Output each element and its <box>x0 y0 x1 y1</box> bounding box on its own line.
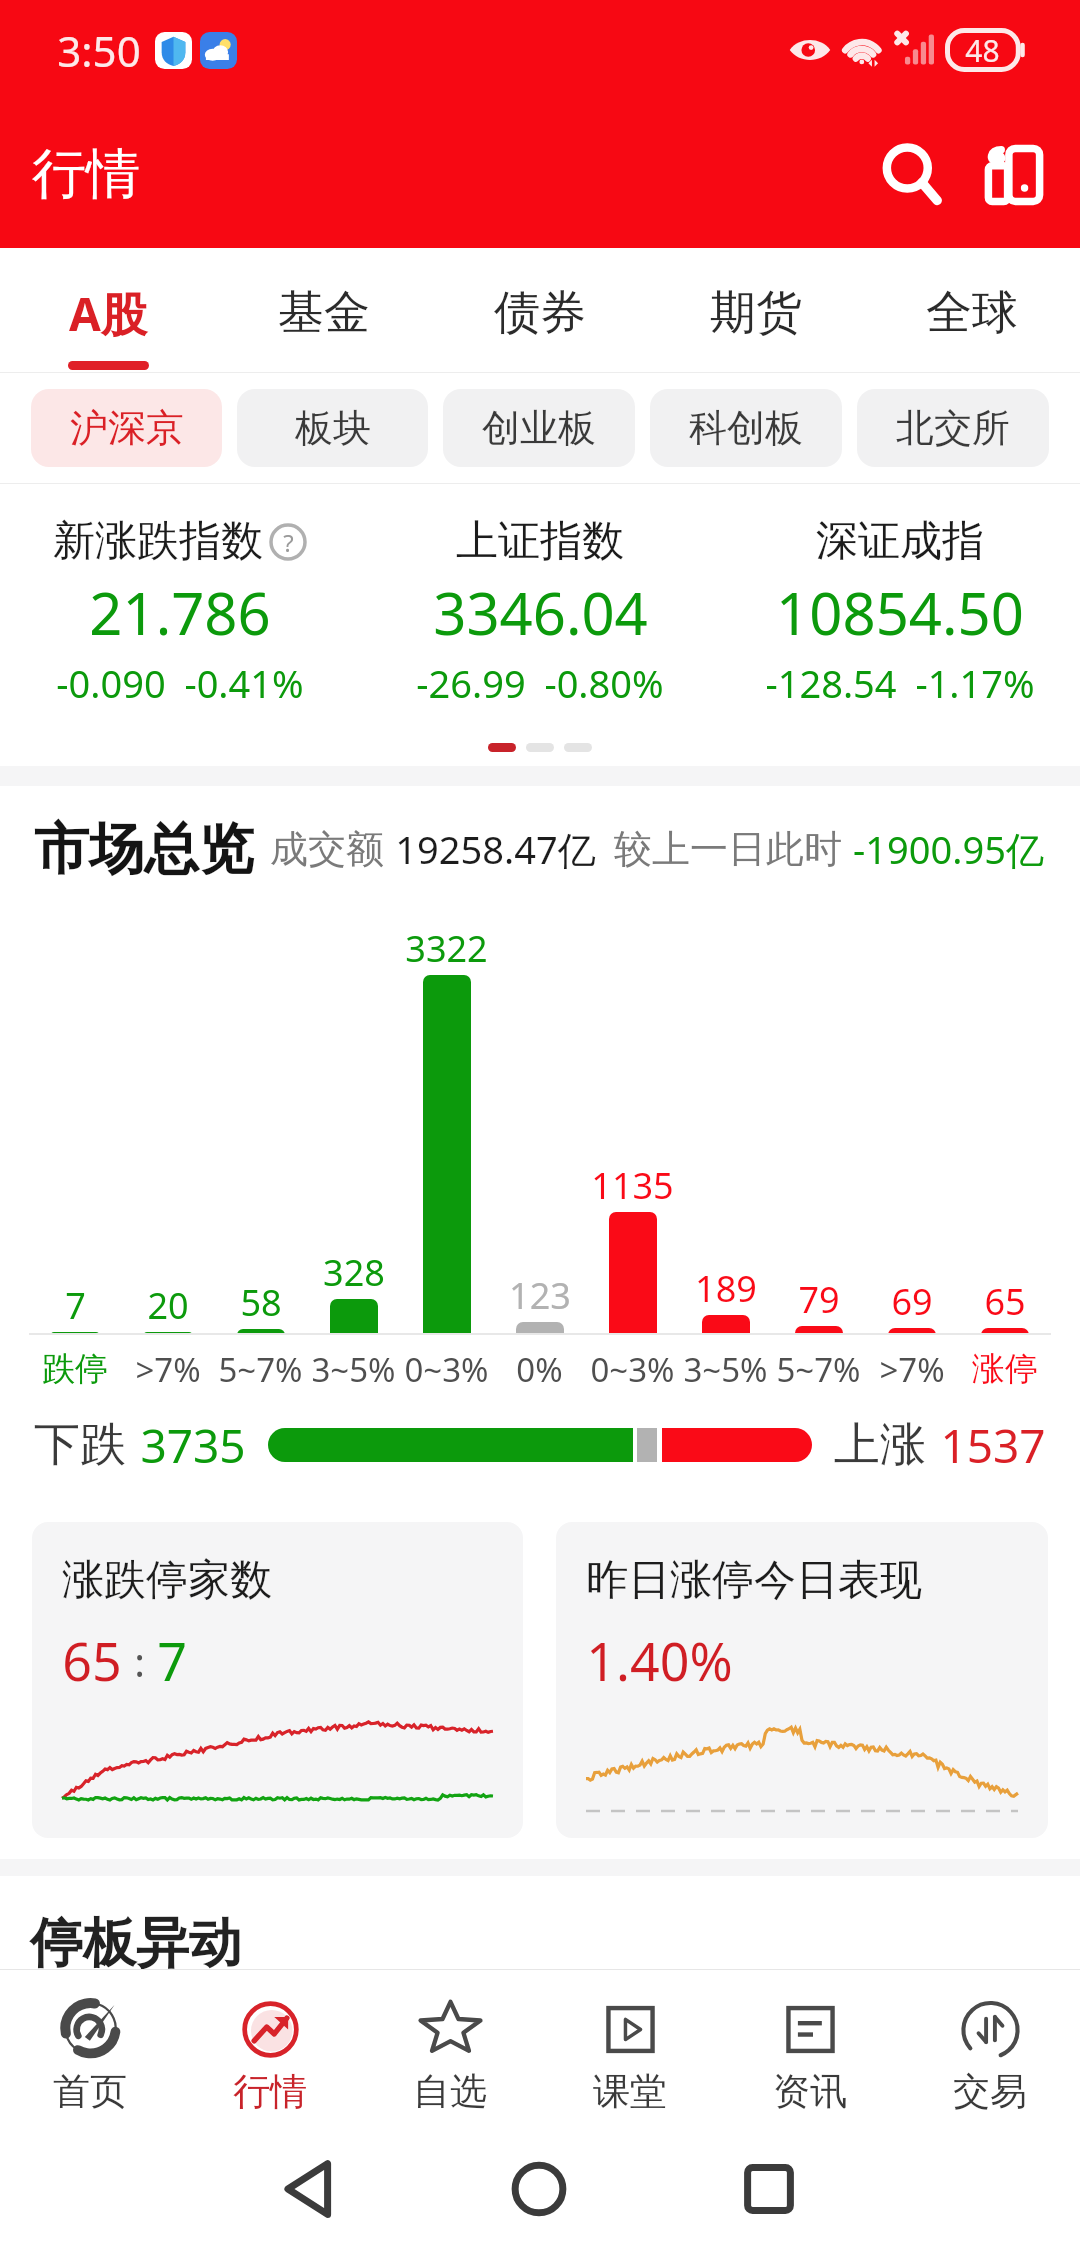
staticText: 65 <box>62 1625 122 1696</box>
staticText: 上涨 <box>834 1416 926 1474</box>
staticText: -128.54 <box>765 657 897 709</box>
staticText: 5~7% <box>218 1347 303 1392</box>
staticText: -26.99 <box>416 657 526 709</box>
button[interactable]: 涨跌停家数 <box>32 1522 523 1838</box>
button[interactable]: Search <box>872 134 952 214</box>
staticText: -1900.95亿 <box>853 823 1044 875</box>
staticText: 3322 <box>405 924 488 973</box>
button[interactable]: 北交所 <box>857 389 1049 467</box>
staticText: : <box>134 1634 145 1688</box>
staticText: >7% <box>135 1347 201 1392</box>
staticText: 3:50 <box>57 22 141 79</box>
button[interactable]: Trade tools <box>974 134 1054 214</box>
staticText: 328 <box>323 1248 385 1297</box>
button[interactable]: 科创板 <box>650 389 842 467</box>
staticText: 行情 <box>233 2068 307 2115</box>
staticText: 189 <box>695 1264 757 1313</box>
staticText: >7% <box>879 1347 945 1392</box>
staticText: 自选 <box>413 2068 487 2115</box>
staticText: 北交所 <box>896 404 1010 452</box>
staticText: 1537 <box>940 1414 1046 1477</box>
staticText: 65 <box>984 1277 1026 1326</box>
button[interactable]: 行情 <box>180 1970 360 2122</box>
staticText: 债券 <box>494 284 586 342</box>
button[interactable]: 上证指数 <box>360 515 720 709</box>
staticText: 昨日涨停今日表现 <box>586 1554 922 1607</box>
staticText: 交易 <box>953 2068 1027 2115</box>
staticText: 1135 <box>591 1161 674 1210</box>
staticText: 21.786 <box>89 573 271 652</box>
staticText: 20 <box>147 1281 189 1330</box>
staticText: 3346.04 <box>433 573 648 652</box>
staticText: ? <box>283 526 294 559</box>
button[interactable]: 期货 <box>648 248 864 372</box>
staticText: 首页 <box>53 2068 127 2115</box>
staticText: 沪深京 <box>70 404 184 452</box>
staticText: -0.41% <box>184 657 304 709</box>
staticText: -1.17% <box>915 657 1035 709</box>
button[interactable]: 全球 <box>864 248 1080 372</box>
staticText: -0.80% <box>544 657 664 709</box>
staticText: 0~3% <box>404 1347 489 1392</box>
staticText: -0.090 <box>56 657 166 709</box>
button[interactable]: 基金 <box>216 248 432 372</box>
staticText: 48 <box>965 30 1000 71</box>
button[interactable]: 沪深京 <box>31 389 222 467</box>
button[interactable]: 交易 <box>900 1970 1080 2122</box>
button[interactable]: 债券 <box>432 248 648 372</box>
staticText: 19258.47亿 <box>395 823 596 875</box>
staticText: 5~7% <box>776 1347 861 1392</box>
staticText: 跌停 <box>42 1348 108 1390</box>
staticText: 创业板 <box>482 404 596 452</box>
staticText: 市场总览 <box>34 815 254 884</box>
button[interactable]: Back <box>278 2158 340 2220</box>
button[interactable]: A股 <box>0 248 216 372</box>
staticText: 成交额 <box>270 825 384 873</box>
staticText: 涨跌停家数 <box>62 1554 272 1607</box>
staticText: 58 <box>240 1278 282 1327</box>
staticText: 资讯 <box>773 2068 847 2115</box>
staticText: 79 <box>798 1275 840 1324</box>
staticText: 69 <box>891 1277 933 1326</box>
staticText: 基金 <box>278 284 370 342</box>
button[interactable]: 资讯 <box>720 1970 900 2122</box>
button[interactable]: 深证成指 <box>720 515 1080 709</box>
staticText: 10854.50 <box>776 573 1024 652</box>
staticText: 7 <box>65 1281 86 1330</box>
button[interactable]: 新涨跌指数 <box>0 515 360 709</box>
staticText: 3~5% <box>683 1347 768 1392</box>
button[interactable]: 课堂 <box>540 1970 720 2122</box>
staticText: 0~3% <box>590 1347 675 1392</box>
staticText: 全球 <box>926 284 1018 342</box>
staticText: 深证成指 <box>816 515 984 568</box>
staticText: 新涨跌指数 <box>53 515 263 568</box>
staticText: 行情 <box>32 140 140 208</box>
staticText: 123 <box>509 1271 571 1320</box>
button[interactable]: 自选 <box>360 1970 540 2122</box>
staticText: 3735 <box>140 1414 246 1477</box>
button[interactable]: 昨日涨停今日表现 <box>556 1522 1048 1838</box>
staticText: A股 <box>69 282 147 345</box>
staticText: 涨停 <box>972 1348 1038 1390</box>
staticText: 3~5% <box>311 1347 396 1392</box>
staticText: 上证指数 <box>456 515 624 568</box>
staticText: 0% <box>516 1347 563 1392</box>
staticText: 板块 <box>295 404 371 452</box>
staticText: 7 <box>157 1625 187 1696</box>
staticText: 科创板 <box>689 404 803 452</box>
button[interactable]: Home <box>508 2158 570 2220</box>
staticText: 课堂 <box>593 2068 667 2115</box>
staticText: 下跌 <box>34 1416 126 1474</box>
button[interactable]: 板块 <box>237 389 428 467</box>
button[interactable]: 首页 <box>0 1970 180 2122</box>
staticText: 期货 <box>710 284 802 342</box>
button[interactable]: 创业板 <box>443 389 635 467</box>
staticText: 较上一日此时 <box>614 825 842 873</box>
staticText: 1.40% <box>586 1625 733 1696</box>
button[interactable]: Recents <box>738 2158 800 2220</box>
staticText: 停板异动 <box>30 1910 242 1977</box>
